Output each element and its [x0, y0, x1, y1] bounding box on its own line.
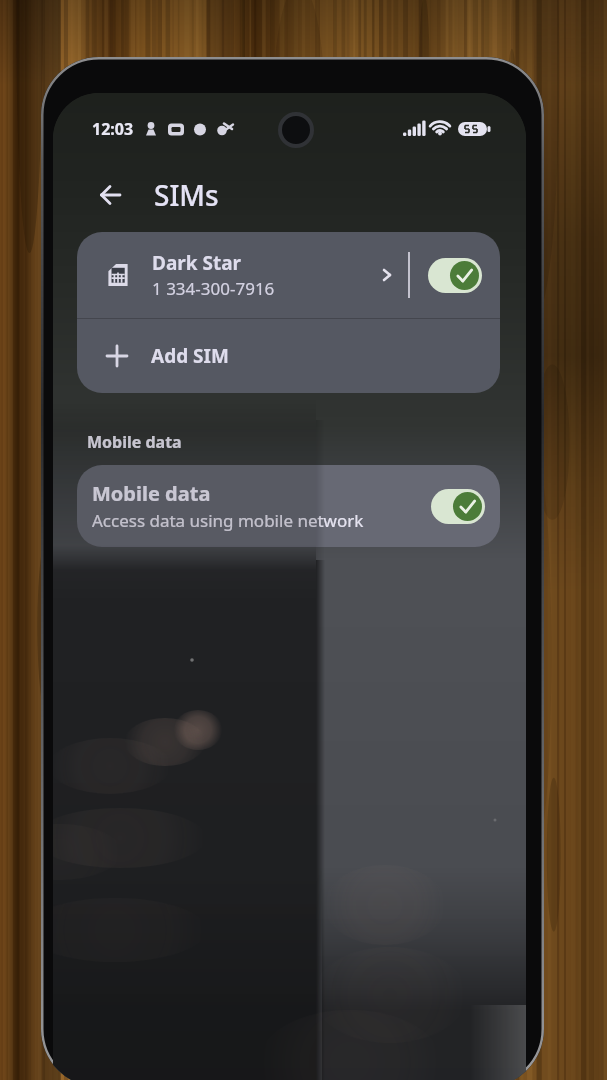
staticText: Mobile data	[87, 431, 182, 453]
staticText: Access data using mobile network	[92, 509, 364, 532]
staticText: Add SIM	[151, 343, 229, 369]
button[interactable]: Mobile data	[77, 465, 500, 547]
button[interactable]: Back	[89, 173, 133, 217]
staticText: 12:03	[92, 118, 134, 140]
button[interactable]: Add SIM	[77, 319, 500, 393]
button[interactable]: Dark Star	[77, 232, 408, 318]
staticText: Dark Star	[152, 250, 242, 276]
staticText: Mobile data	[92, 480, 211, 507]
button[interactable]	[410, 232, 500, 318]
staticText: SIMs	[154, 176, 219, 214]
staticText: 1 334-300-7916	[152, 277, 275, 300]
